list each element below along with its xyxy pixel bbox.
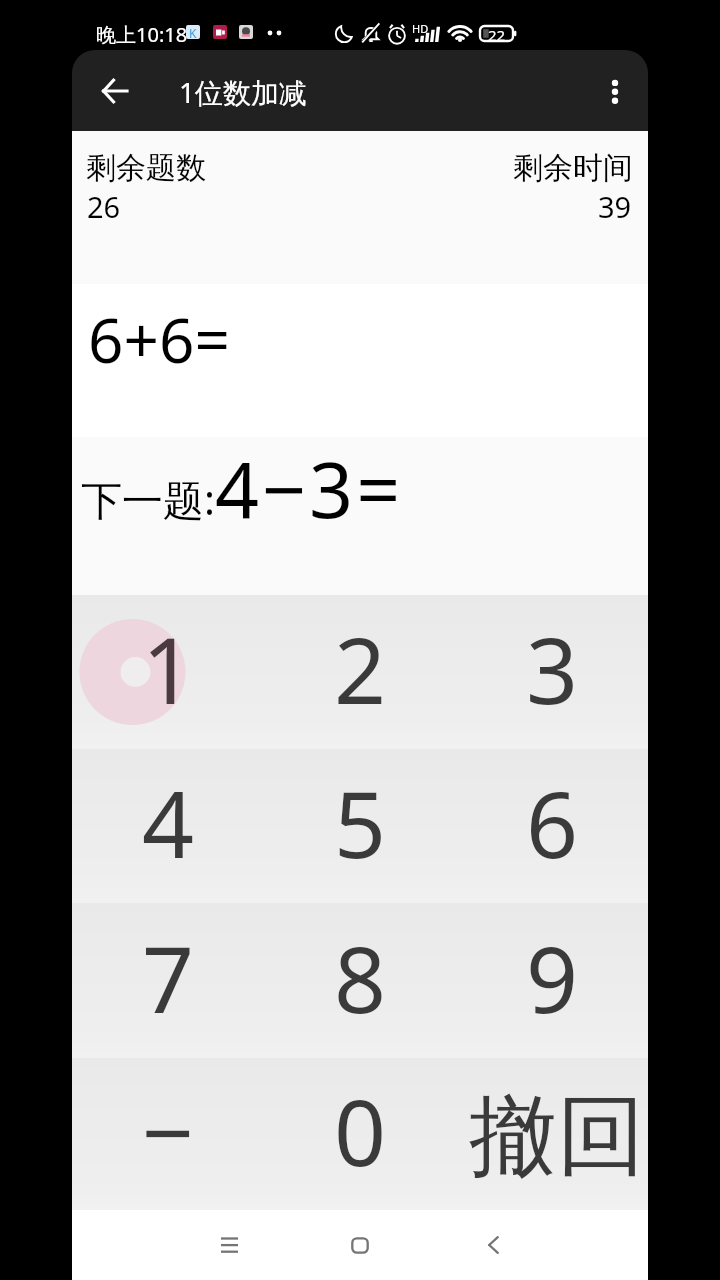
staticText: 1位数加减 (179, 73, 308, 111)
staticText: 22 (488, 25, 506, 45)
staticText: 6+6= (88, 297, 230, 381)
button[interactable]: More options (587, 50, 643, 131)
staticText: 8 (334, 916, 387, 1040)
staticText: 4 (142, 761, 195, 885)
staticText: 2 (334, 607, 387, 731)
button[interactable]: 7 (72, 903, 264, 1058)
button[interactable]: 6 (456, 749, 648, 903)
staticText: 5 (334, 761, 387, 885)
button[interactable]: 4 (72, 749, 264, 903)
staticText: HD (412, 21, 429, 36)
button[interactable]: 0 (264, 1058, 456, 1210)
staticText: K (189, 25, 197, 39)
staticText: 9 (526, 916, 579, 1040)
staticText: 26 (87, 187, 121, 226)
button[interactable]: 8 (264, 903, 456, 1058)
staticText: 7 (142, 916, 195, 1040)
staticText: − (142, 1069, 195, 1193)
button[interactable]: Home (332, 1210, 388, 1280)
button[interactable]: − (72, 1058, 264, 1210)
button[interactable]: 撤回 (456, 1058, 648, 1210)
staticText: 撤回 (469, 1081, 645, 1192)
button[interactable]: 9 (456, 903, 648, 1058)
staticText: 39 (598, 187, 632, 226)
staticText: 剩余时间 (513, 149, 633, 187)
staticText: 1 (142, 607, 195, 731)
button[interactable]: Recent apps (201, 1210, 257, 1280)
staticText: 剩余题数 (86, 149, 206, 187)
button[interactable]: 5 (264, 749, 456, 903)
staticText: 4−3= (215, 436, 404, 541)
staticText: 0 (334, 1069, 387, 1193)
button[interactable]: 1 (72, 595, 264, 749)
button[interactable]: Back (465, 1210, 521, 1280)
staticText: 晚上10:18 (96, 21, 188, 48)
button[interactable]: 3 (456, 595, 648, 749)
staticText: 6 (526, 761, 579, 885)
staticText: 3 (526, 607, 579, 731)
button[interactable]: Back (86, 50, 142, 131)
staticText: 下一题: (81, 471, 215, 527)
button[interactable]: 2 (264, 595, 456, 749)
